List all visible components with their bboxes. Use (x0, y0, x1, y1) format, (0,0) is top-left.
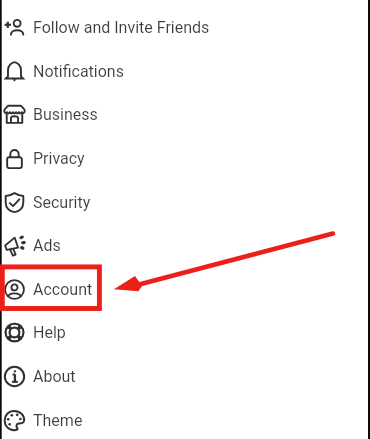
button[interactable]: Theme (0, 398, 370, 439)
staticText: Privacy (33, 149, 85, 168)
staticText: Ads (33, 236, 61, 255)
button[interactable]: Ads (0, 223, 370, 267)
button[interactable]: Security (0, 180, 370, 224)
button[interactable]: Account (0, 267, 370, 311)
staticText: Follow and Invite Friends (33, 18, 210, 37)
staticText: About (33, 367, 76, 386)
staticText: Help (33, 323, 66, 342)
button[interactable]: Help (0, 310, 370, 354)
staticText: Theme (33, 411, 83, 430)
button[interactable]: Business (0, 92, 370, 136)
button[interactable]: About (0, 354, 370, 398)
staticText: Notifications (33, 62, 124, 81)
button[interactable]: Notifications (0, 49, 370, 93)
staticText: Account (33, 280, 93, 299)
staticText: Business (33, 105, 98, 124)
staticText: Security (33, 193, 91, 212)
button[interactable]: Privacy (0, 136, 370, 180)
button[interactable]: Follow and Invite Friends (0, 5, 370, 49)
